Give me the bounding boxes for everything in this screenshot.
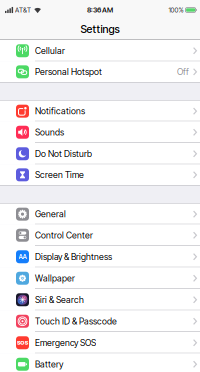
staticText: Touch ID & Passcode <box>35 316 117 326</box>
button[interactable]: AA <box>0 246 200 267</box>
button[interactable]: Control Center <box>0 224 200 246</box>
staticText: Sounds <box>35 127 64 137</box>
staticText: Battery <box>35 359 63 369</box>
button[interactable]: Wallpaper <box>0 267 200 289</box>
staticText: Siri & Search <box>35 294 84 305</box>
button[interactable]: SOS <box>0 332 200 353</box>
staticText: AA <box>18 253 26 261</box>
staticText: Emergency SOS <box>35 337 96 348</box>
staticText: Notifications <box>35 106 85 116</box>
staticText: General <box>35 209 66 219</box>
button[interactable]: Do Not Disturb <box>0 143 200 164</box>
staticText: AT&T <box>15 6 31 14</box>
staticText: Display & Brightness <box>35 251 112 262</box>
staticText: Do Not Disturb <box>35 148 92 159</box>
staticText: Cellular <box>35 45 65 56</box>
staticText: Off <box>177 66 189 77</box>
button[interactable]: General <box>0 204 200 224</box>
staticText: Screen Time <box>35 169 84 180</box>
button[interactable]: Screen Time <box>0 164 200 185</box>
button[interactable]: Siri & Search <box>0 289 200 310</box>
staticText: Wallpaper <box>35 273 75 283</box>
button[interactable]: Battery <box>0 353 200 372</box>
button[interactable]: Personal Hotspot <box>0 61 200 82</box>
button[interactable]: Cellular <box>0 40 200 61</box>
staticText: 100% <box>168 6 183 14</box>
staticText: Personal Hotspot <box>35 66 102 77</box>
staticText: Control Center <box>35 230 93 240</box>
staticText: 8:36 AM <box>87 6 113 14</box>
staticText: SOS <box>12 337 32 349</box>
button[interactable]: Sounds <box>0 121 200 143</box>
staticText: Settings <box>80 23 119 35</box>
button[interactable]: Touch ID & Passcode <box>0 310 200 332</box>
button[interactable]: Notifications <box>0 101 200 121</box>
